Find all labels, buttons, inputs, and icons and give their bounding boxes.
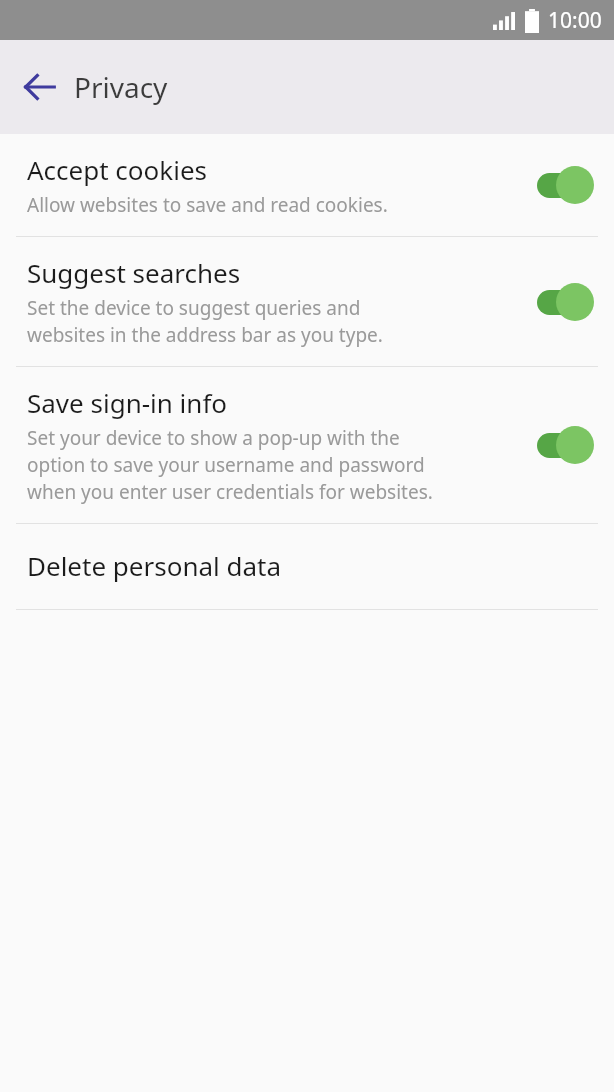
button[interactable]: Save sign-in info: [0, 367, 614, 523]
button[interactable]: Delete personal data: [0, 524, 614, 609]
staticText: Set the device to suggest queries and we…: [27, 295, 383, 348]
button[interactable]: Toggle on: [536, 282, 594, 322]
staticText: Accept cookies: [27, 152, 208, 187]
staticText: Allow websites to save and read cookies.: [27, 192, 388, 218]
staticText: Set your device to show a pop-up with th…: [27, 425, 433, 505]
button[interactable]: Toggle on: [536, 165, 594, 205]
staticText: Delete personal data: [27, 548, 282, 583]
button[interactable]: Accept cookies: [0, 134, 614, 236]
button[interactable]: Suggest searches: [0, 237, 614, 366]
button[interactable]: Back: [14, 61, 66, 113]
staticText: 10:00: [548, 6, 602, 35]
staticText: Save sign-in info: [27, 385, 228, 420]
staticText: Suggest searches: [27, 255, 241, 290]
staticText: Privacy: [74, 68, 168, 106]
button[interactable]: Toggle on: [536, 425, 594, 465]
